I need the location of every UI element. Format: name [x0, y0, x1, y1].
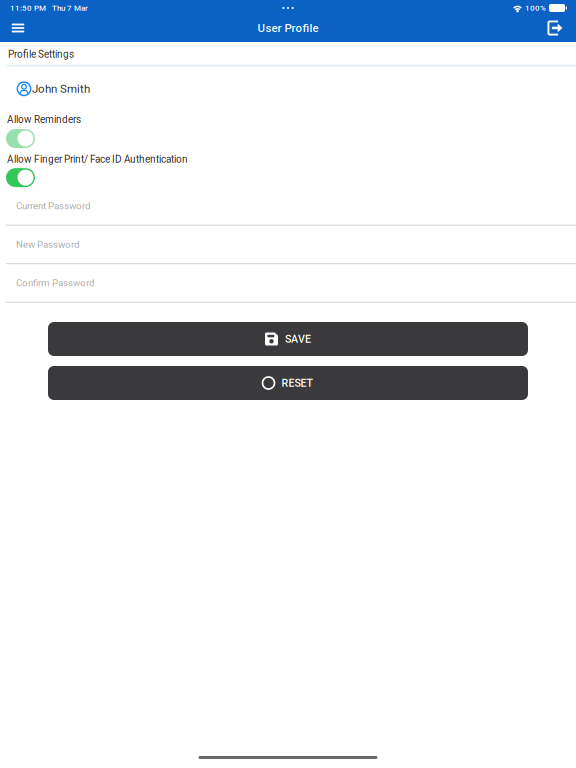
staticText: 100% [525, 3, 546, 13]
staticText: 11:50 PM [10, 3, 46, 13]
staticText: John Smith [32, 82, 90, 95]
staticText: Confirm Password [16, 277, 94, 289]
button[interactable]: New Password [0, 234, 576, 272]
button[interactable]: SAVE [48, 322, 528, 356]
button[interactable]: Log out [541, 15, 569, 41]
staticText: User Profile [257, 21, 318, 35]
button[interactable]: RESET [48, 366, 528, 400]
button[interactable]: Confirm Password [0, 272, 576, 311]
staticText: Current Password [16, 200, 90, 212]
staticText: Allow Finger Print/ Face ID Authenticati… [7, 153, 188, 165]
staticText: Allow Reminders [7, 114, 81, 125]
button[interactable]: Allow Finger Print/ Face ID Authenticati… [6, 168, 35, 187]
button[interactable]: Current Password [0, 195, 576, 234]
staticText: SAVE [285, 333, 311, 345]
button[interactable]: Menu [3, 15, 33, 41]
staticText: New Password [16, 239, 79, 250]
button[interactable]: Allow Reminders [6, 129, 35, 148]
staticText: RESET [281, 377, 313, 389]
staticText: Thu 7 Mar [52, 3, 88, 13]
staticText: Profile Settings [8, 48, 74, 60]
